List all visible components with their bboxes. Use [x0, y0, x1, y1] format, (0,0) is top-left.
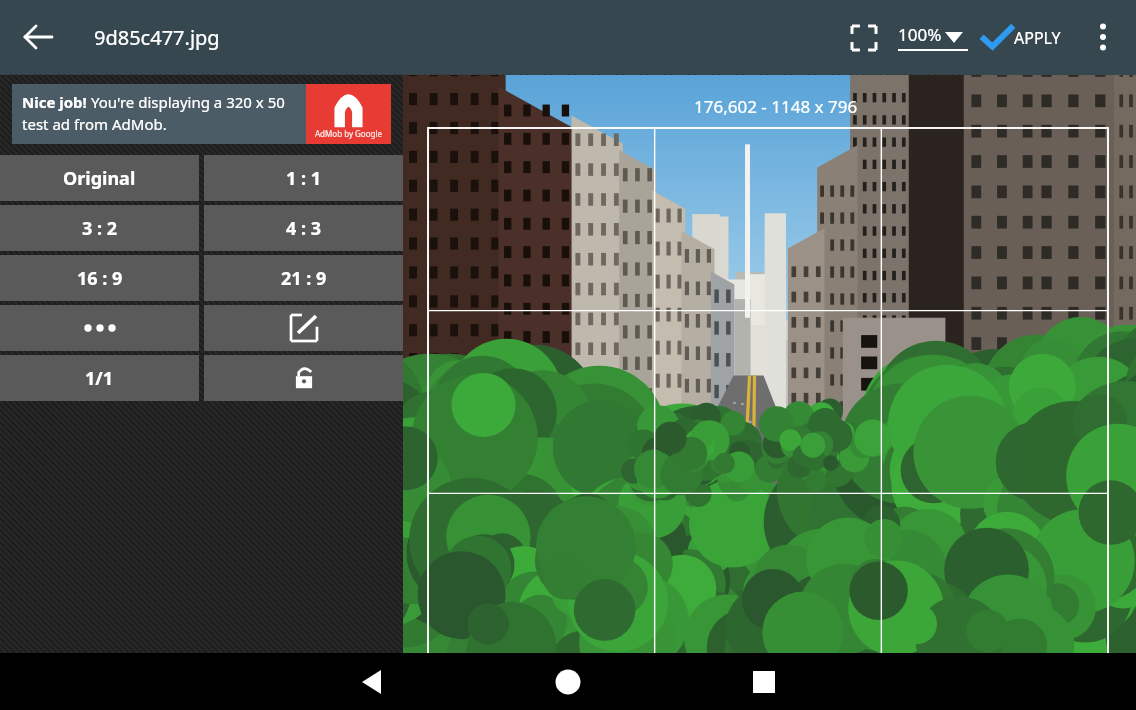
staticText: 1/1 — [85, 366, 114, 391]
staticText: 3 : 2 — [82, 216, 118, 241]
button[interactable]: Original — [0, 155, 199, 201]
staticText: 176,602 - 1148 x 796 — [694, 95, 858, 118]
staticText: 9d85c477.jpg — [94, 24, 220, 51]
staticText: APPLY — [1014, 27, 1061, 49]
staticText: 21 : 9 — [281, 266, 327, 291]
staticText: 16 : 9 — [77, 266, 123, 291]
staticText: You're displaying a 320 x 50 — [87, 92, 285, 112]
button[interactable]: Unlock aspect ratio — [204, 355, 403, 401]
button[interactable]: 100% — [898, 19, 968, 57]
staticText: 100% — [898, 23, 942, 46]
button[interactable]: Recent apps — [740, 658, 788, 706]
staticText: 4 : 3 — [286, 216, 322, 241]
button[interactable]: Custom ratio — [204, 305, 403, 351]
staticText: Nice job! — [22, 92, 87, 112]
button[interactable]: Fullscreen — [846, 20, 882, 56]
staticText: Original — [63, 166, 136, 191]
staticText: test ad from AdMob. — [22, 114, 167, 134]
button[interactable]: 1 : 1 — [204, 155, 403, 201]
button[interactable]: 3 : 2 — [0, 205, 199, 251]
button[interactable]: Back — [20, 18, 58, 56]
staticText: 1 : 1 — [286, 166, 322, 191]
button[interactable]: More options — [1084, 18, 1122, 56]
button[interactable]: Nice job! — [12, 84, 391, 144]
button[interactable]: 16 : 9 — [0, 255, 199, 301]
button[interactable]: 1/1 — [0, 355, 199, 401]
button[interactable]: APPLY — [978, 17, 1061, 59]
button[interactable]: 21 : 9 — [204, 255, 403, 301]
button[interactable]: More aspect ratios — [0, 305, 199, 351]
button[interactable]: Home — [544, 658, 592, 706]
staticText: AdMob by Google — [315, 128, 383, 139]
button[interactable]: Back — [348, 658, 396, 706]
button[interactable]: 4 : 3 — [204, 205, 403, 251]
